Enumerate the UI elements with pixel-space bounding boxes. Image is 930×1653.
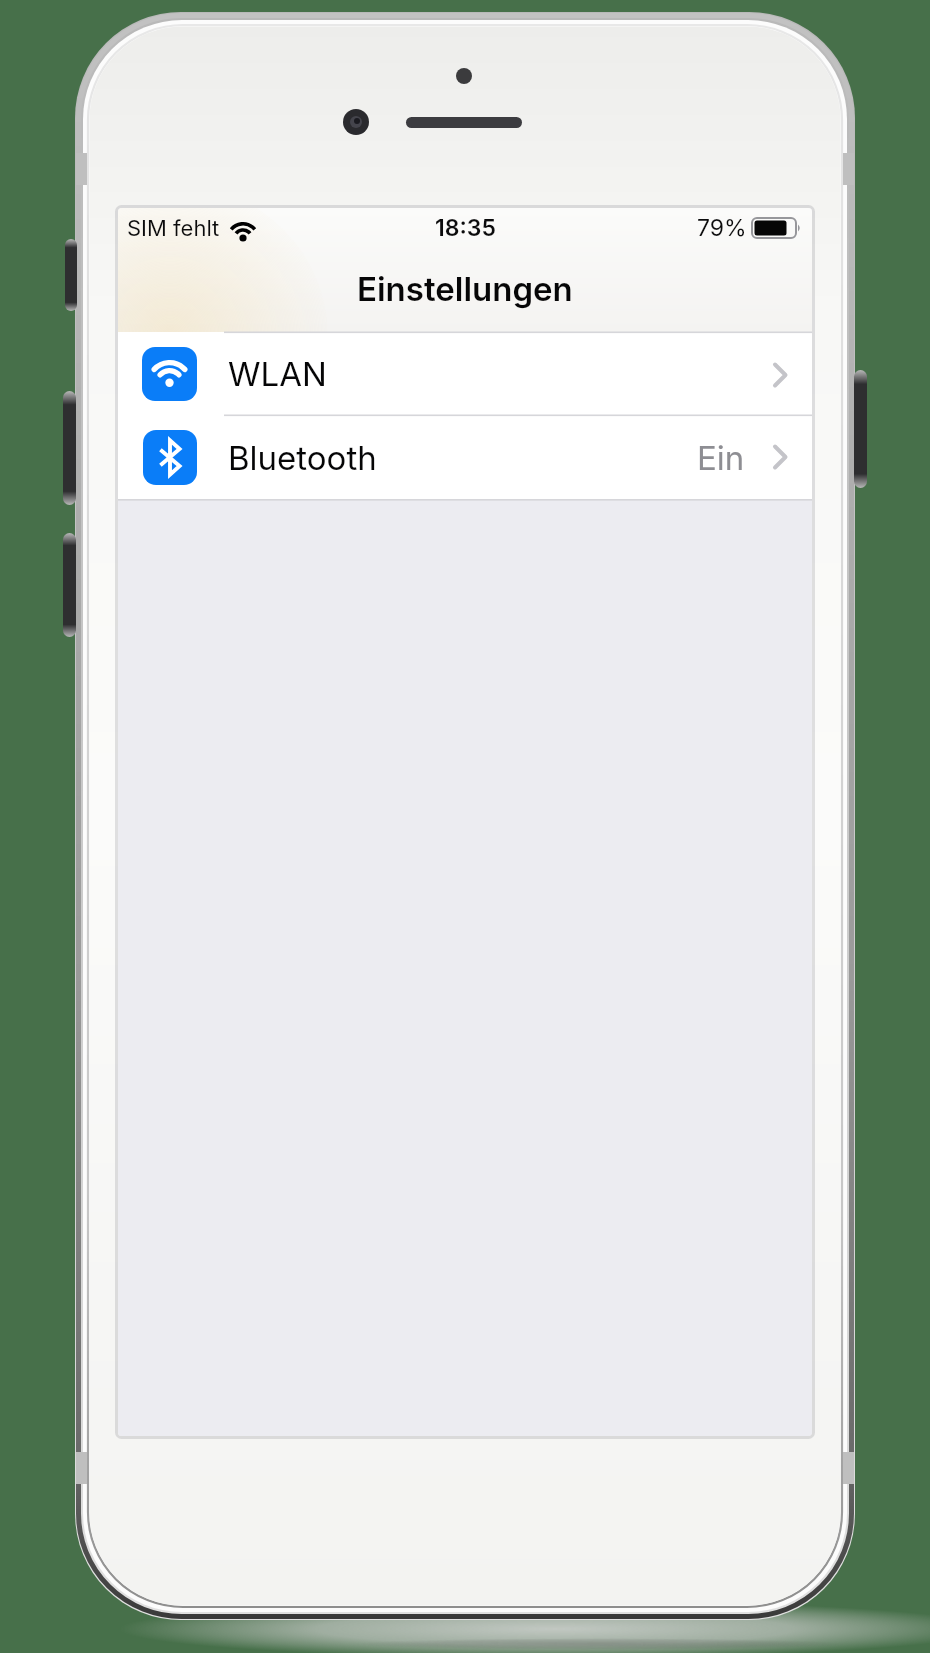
staticText: SIM fehlt	[127, 215, 220, 242]
staticText: Ein	[697, 438, 745, 478]
staticText: 18:35	[435, 214, 496, 242]
button[interactable]: WLAN	[118, 333, 812, 415]
staticText: 79%	[697, 214, 747, 242]
button[interactable]: Bluetooth	[118, 416, 812, 499]
staticText: Einstellungen	[357, 269, 573, 309]
staticText: WLAN	[228, 354, 327, 394]
staticText: Bluetooth	[228, 438, 377, 478]
